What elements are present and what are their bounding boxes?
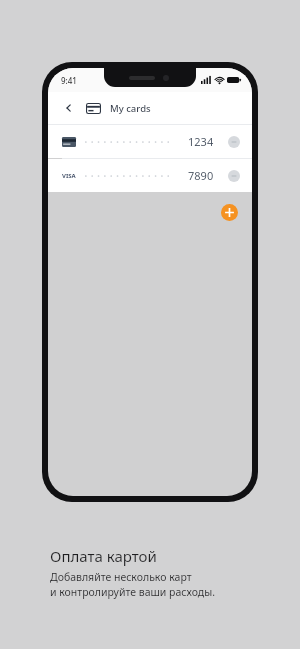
staticText: 1234 [188,134,214,149]
staticText: 9:41 [61,75,77,86]
button[interactable]: Back [60,99,78,117]
staticText: Оплата картой [50,546,157,566]
staticText: и контролируйте ваши расходы. [50,585,215,599]
button[interactable]: Remove card 1234 [228,136,240,148]
staticText: My cards [110,102,151,115]
button[interactable]: Add card [221,204,238,221]
staticText: VISA [62,172,76,180]
staticText: 7890 [188,168,214,183]
staticText: Добавляйте несколько карт [50,570,192,584]
button[interactable]: Remove card 7890 [228,170,240,182]
button[interactable]: VISA [48,159,252,192]
button[interactable]: 1234 [48,125,252,158]
